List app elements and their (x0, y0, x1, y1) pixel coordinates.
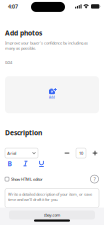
button[interactable]: Show HTML editor (5, 176, 43, 182)
button[interactable]: Arial (5, 148, 38, 158)
staticText: 10 (79, 150, 83, 156)
staticText: Write a detailed description of your ite… (8, 192, 92, 202)
button[interactable]: Underline (37, 160, 46, 168)
button[interactable]: Italic (21, 160, 30, 168)
staticText: Improve your buyer's confidence by inclu… (5, 40, 88, 51)
staticText: 4:07 (8, 3, 18, 10)
staticText: Show HTML editor (11, 176, 43, 182)
staticText: Description (5, 128, 42, 137)
staticText: Add photos (5, 28, 42, 37)
staticText: ebay.com (43, 212, 60, 218)
button[interactable]: Help (90, 175, 99, 184)
staticText: 0/24 (5, 60, 12, 65)
button[interactable]: Increase font size (91, 148, 99, 158)
staticText: Add (49, 96, 55, 99)
staticText: ? (93, 175, 95, 183)
button[interactable]: Bold (5, 160, 14, 168)
staticText: Arial (7, 150, 16, 156)
button[interactable]: Add (5, 76, 99, 113)
button[interactable]: Decrease font size (63, 148, 71, 158)
staticText: B (7, 159, 11, 168)
button[interactable]: ebay.com (9, 210, 95, 219)
